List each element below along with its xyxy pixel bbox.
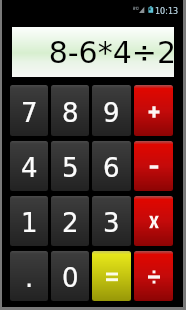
staticText: 5 <box>62 153 79 183</box>
button[interactable]: Multiply <box>134 196 173 246</box>
staticText: 8 <box>62 98 79 128</box>
button[interactable]: 5 <box>51 141 89 191</box>
staticText: 1 <box>21 208 38 238</box>
button[interactable]: 7 <box>10 85 48 136</box>
staticText: 4 <box>21 153 38 183</box>
button[interactable]: 1 <box>10 196 48 246</box>
button[interactable]: 9 <box>92 85 131 136</box>
staticText: 3 <box>103 208 120 238</box>
button[interactable]: 2 <box>51 196 89 246</box>
staticText: 9 <box>103 98 120 128</box>
button[interactable]: 3 <box>92 196 131 246</box>
button[interactable]: Equals <box>92 251 131 301</box>
staticText: . <box>25 263 34 293</box>
button[interactable]: Minus <box>134 141 173 191</box>
button[interactable]: 8 <box>51 85 89 136</box>
staticText: 7 <box>21 98 38 128</box>
staticText: 10:13 <box>155 7 179 16</box>
button[interactable]: Plus <box>134 85 173 136</box>
button[interactable]: . <box>10 251 48 301</box>
button[interactable]: 4 <box>10 141 48 191</box>
button[interactable]: Divide <box>134 251 173 301</box>
button[interactable]: 6 <box>92 141 131 191</box>
button[interactable]: 0 <box>51 251 89 301</box>
staticText: 0 <box>62 263 79 293</box>
staticText: 6 <box>103 153 120 183</box>
staticText: 8-6*4÷2 <box>48 35 176 70</box>
staticText: 2 <box>62 208 79 238</box>
